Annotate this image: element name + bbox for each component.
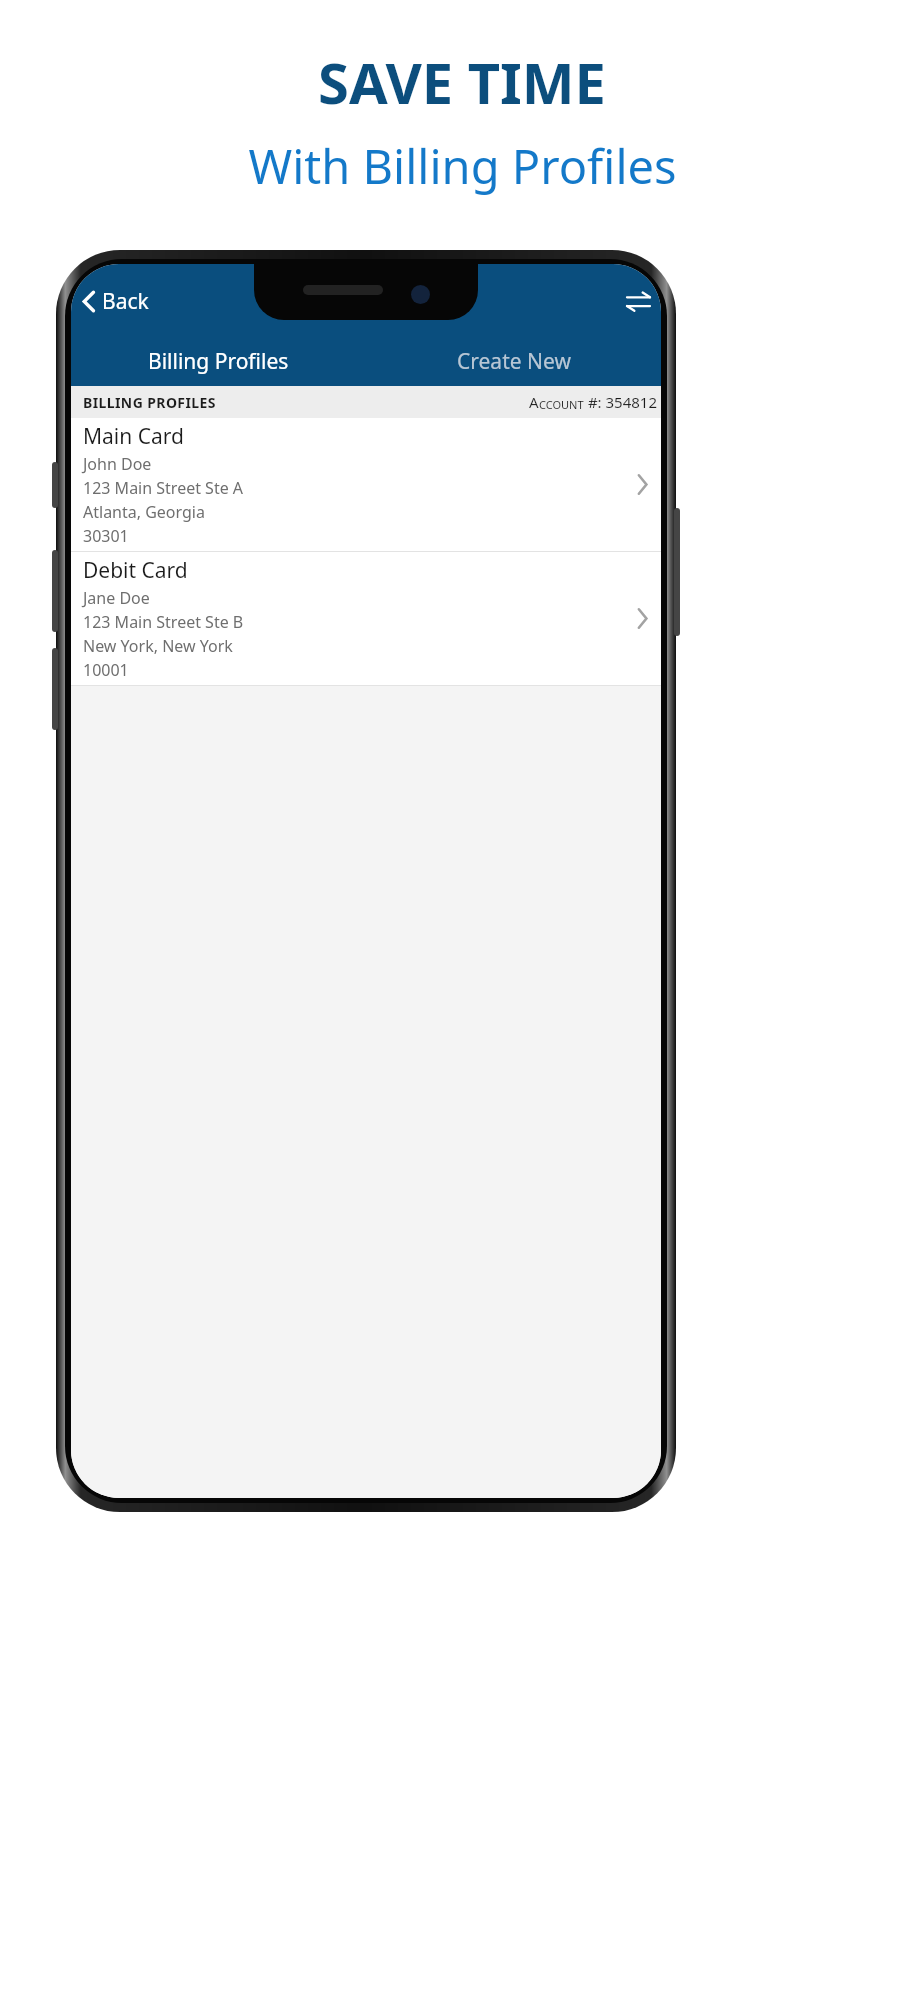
button[interactable]: Billing Profiles [71, 336, 366, 386]
staticText: Jane Doe [83, 587, 150, 609]
staticText: John Doe [83, 453, 152, 475]
staticText: BILLING PROFILES [83, 393, 216, 412]
staticText: 123 Main Street Ste A [83, 477, 244, 499]
staticText: Create New [457, 347, 571, 376]
staticText: SAVE TIME [318, 44, 606, 120]
staticText: CCOUNT [539, 397, 584, 412]
staticText: New York, New York [83, 635, 233, 657]
button[interactable]: Main Card [71, 418, 661, 551]
staticText: A [529, 392, 539, 412]
staticText: Atlanta, Georgia [83, 501, 205, 523]
staticText: Billing Profiles [148, 347, 289, 376]
button[interactable]: Create New [366, 336, 661, 386]
staticText: 30301 [83, 525, 129, 547]
staticText: 123 Main Street Ste B [83, 611, 244, 633]
button[interactable]: Switch account [615, 278, 661, 324]
staticText: Main Card [83, 422, 184, 451]
staticText: With Billing Profiles [248, 134, 677, 198]
button[interactable]: Back [71, 280, 163, 322]
staticText: Debit Card [83, 556, 188, 585]
staticText: 10001 [83, 659, 129, 681]
button[interactable]: Debit Card [71, 552, 661, 685]
staticText: #: 354812 [584, 392, 657, 412]
staticText: Back [102, 287, 149, 316]
